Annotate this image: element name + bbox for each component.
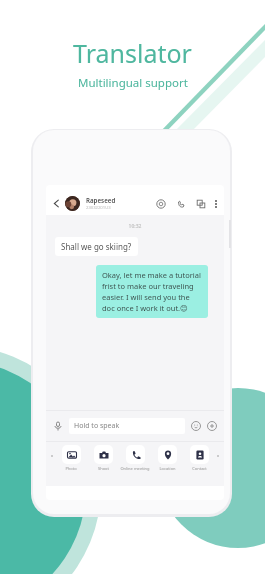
button[interactable]: Translate: [154, 197, 167, 210]
button[interactable]: Add: [205, 419, 219, 433]
button[interactable]: More options: [210, 198, 221, 209]
staticText: Okay, let me make a tutorial frist to ma…: [102, 270, 202, 313]
staticText: Online meeting: [120, 466, 150, 471]
staticText: 23032201U3: [86, 205, 111, 211]
button[interactable]: Hold to speak: [69, 418, 185, 434]
button[interactable]: Call: [174, 197, 187, 210]
staticText: Shall we go skiing?: [61, 241, 132, 252]
button[interactable]: Group: [194, 197, 207, 210]
staticText: 10:32: [46, 223, 224, 230]
button[interactable]: Photo: [56, 445, 86, 471]
button[interactable]: Voice message: [51, 419, 65, 433]
staticText: Contact: [192, 466, 207, 471]
button[interactable]: Back: [51, 198, 62, 209]
button[interactable]: Contact: [184, 445, 214, 471]
button[interactable]: Emoji: [189, 419, 203, 433]
staticText: Translator: [73, 36, 192, 70]
staticText: Multilingual support: [78, 75, 188, 91]
staticText: Hold to speak: [74, 421, 120, 431]
button[interactable]: Online meeting: [120, 445, 150, 471]
staticText: Photo: [65, 466, 77, 471]
button[interactable]: Shoot: [88, 445, 118, 471]
staticText: Location: [159, 466, 176, 471]
staticText: Rapeseed: [86, 196, 116, 204]
button[interactable]: Location: [152, 445, 182, 471]
staticText: Shoot: [98, 466, 109, 471]
